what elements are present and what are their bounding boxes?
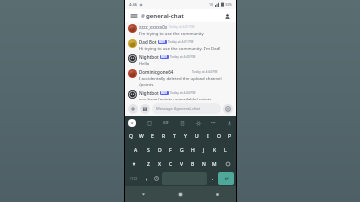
- button[interactable]: C: [165, 157, 176, 171]
- button[interactable]: Home: [162, 186, 199, 202]
- staticText: L: [224, 147, 227, 154]
- button[interactable]: J: [198, 143, 209, 157]
- button[interactable]: Back: [128, 119, 136, 127]
- button[interactable]: .: [208, 172, 217, 185]
- staticText: BOT: [159, 40, 166, 44]
- button[interactable]: Stickers: [178, 119, 186, 127]
- staticText: /points: [139, 81, 154, 87]
- button[interactable]: T: [169, 129, 180, 143]
- staticText: Q: [129, 133, 133, 140]
- staticText: BOT: [161, 55, 168, 59]
- button[interactable]: B: [187, 157, 198, 171]
- button[interactable]: Backspace: [220, 157, 235, 171]
- staticText: Hello: [139, 60, 150, 66]
- button[interactable]: X: [154, 157, 165, 171]
- button[interactable]: L: [220, 143, 231, 157]
- staticText: GIF: [163, 120, 169, 125]
- staticText: F: [169, 147, 172, 154]
- staticText: .: [212, 175, 214, 182]
- staticText: T: [173, 133, 176, 140]
- staticText: K: [213, 147, 217, 154]
- button[interactable]: Clipboard: [145, 119, 153, 127]
- staticText: #: [141, 12, 145, 20]
- staticText: Z: [147, 161, 150, 168]
- staticText: D: [158, 147, 162, 154]
- staticText: zzzz_xxxxx0x: [139, 24, 168, 30]
- button[interactable]: Nightbot: [125, 53, 236, 67]
- button[interactable]: G: [176, 143, 187, 157]
- staticText: I accidentally deleted the upload channe…: [139, 75, 222, 81]
- button[interactable]: ?123: [126, 172, 142, 185]
- staticText: E: [151, 133, 154, 140]
- staticText: U: [195, 133, 199, 140]
- staticText: you have (points unavailable) points.: [139, 96, 213, 100]
- staticText: Today at 4:01 PM: [168, 40, 194, 44]
- staticText: Today at 4:40 PM: [170, 55, 196, 59]
- button[interactable]: M: [209, 157, 220, 171]
- staticText: Today at 4:44 PM: [170, 91, 196, 95]
- button[interactable]: Emoji: [151, 172, 161, 185]
- button[interactable]: •••: [210, 119, 217, 126]
- button[interactable]: Member list: [222, 11, 232, 21]
- staticText: J: [203, 147, 205, 154]
- staticText: Today at 4:44 PM: [192, 70, 218, 74]
- staticText: Hi trying to use the community. I'm Dad!: [139, 45, 221, 51]
- button[interactable]: F: [165, 143, 176, 157]
- staticText: Nightbot: [139, 54, 159, 60]
- button[interactable]: Y: [180, 129, 191, 143]
- button[interactable]: Back: [125, 186, 162, 202]
- button[interactable]: Dad Bot: [125, 38, 236, 52]
- staticText: A: [134, 147, 138, 154]
- button[interactable]: Open navigation drawer: [129, 11, 139, 21]
- staticText: I'm trying to use the community: [139, 30, 204, 36]
- staticText: C: [169, 161, 173, 168]
- button[interactable]: Emoji: [223, 104, 233, 114]
- button[interactable]: S: [142, 143, 154, 157]
- button[interactable]: W: [136, 129, 147, 143]
- button[interactable]: Message #general-chat: [152, 103, 221, 114]
- button[interactable]: E: [147, 129, 158, 143]
- button[interactable]: N: [198, 157, 209, 171]
- staticText: N: [202, 161, 206, 168]
- button[interactable]: ,: [142, 172, 151, 185]
- button[interactable]: Add attachment: [128, 104, 138, 114]
- staticText: X: [158, 161, 161, 168]
- button[interactable]: K: [209, 143, 220, 157]
- staticText: M: [212, 161, 217, 168]
- button[interactable]: Nightbot: [125, 89, 236, 101]
- button[interactable]: Settings: [194, 119, 202, 127]
- button[interactable]: R: [158, 129, 169, 143]
- staticText: BOT: [161, 91, 168, 95]
- staticText: H: [191, 147, 195, 154]
- button[interactable]: Z: [142, 157, 154, 171]
- button[interactable]: O: [213, 129, 224, 143]
- staticText: G: [180, 147, 184, 154]
- staticText: Today at 4:01 PM: [169, 25, 195, 29]
- button[interactable]: I: [202, 129, 213, 143]
- staticText: Dominicgone64 (-)sleep(): [139, 69, 191, 75]
- button[interactable]: Recent apps: [199, 186, 236, 202]
- button[interactable]: V: [176, 157, 187, 171]
- button[interactable]: U: [191, 129, 202, 143]
- button[interactable]: P: [224, 129, 235, 143]
- button[interactable]: Q: [126, 129, 136, 143]
- button[interactable]: A: [130, 143, 142, 157]
- button[interactable]: zzzz_xxxxx0x: [125, 23, 236, 37]
- staticText: O: [217, 133, 221, 140]
- button[interactable]: Send a gift: [140, 104, 150, 114]
- staticText: ,: [146, 175, 148, 182]
- staticText: Nightbot: [139, 90, 159, 96]
- staticText: P: [228, 133, 232, 140]
- button[interactable]: Dominicgone64 (-)sleep(): [125, 68, 236, 88]
- staticText: R: [162, 133, 166, 140]
- button[interactable]: GIF: [162, 119, 170, 126]
- staticText: •••: [211, 120, 216, 125]
- button[interactable]: H: [187, 143, 198, 157]
- button[interactable]: Voice input: [225, 119, 233, 127]
- staticText: ?123: [130, 176, 138, 181]
- staticText: general-chat: [146, 12, 184, 20]
- button[interactable]: D: [154, 143, 165, 157]
- button[interactable]: Enter: [218, 172, 234, 185]
- button[interactable]: Shift: [126, 157, 142, 171]
